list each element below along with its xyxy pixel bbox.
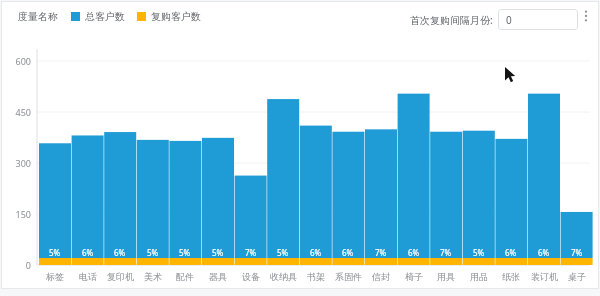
button[interactable]: 总客户数 bbox=[71, 10, 125, 23]
staticText: 书架 bbox=[307, 271, 325, 282]
staticText: 标签 bbox=[46, 271, 64, 282]
staticText: 电话 bbox=[79, 271, 97, 282]
staticText: 6% bbox=[505, 247, 517, 258]
staticText: 300 bbox=[15, 157, 31, 169]
staticText: 7% bbox=[375, 247, 387, 258]
staticText: 器具 bbox=[209, 271, 227, 282]
staticText: 5% bbox=[473, 247, 485, 258]
staticText: 用品 bbox=[470, 271, 488, 282]
staticText: 450 bbox=[15, 106, 31, 118]
staticText: 复印机 bbox=[107, 271, 134, 282]
staticText: 5% bbox=[277, 247, 289, 258]
staticText: 美术 bbox=[144, 271, 162, 282]
staticText: 6% bbox=[538, 247, 550, 258]
staticText: 6% bbox=[342, 247, 354, 258]
staticText: 纸张 bbox=[502, 271, 520, 282]
staticText: 6% bbox=[82, 247, 94, 258]
staticText: 度量名称 bbox=[18, 10, 58, 23]
staticText: 0 bbox=[506, 13, 512, 27]
staticText: 7% bbox=[440, 247, 452, 258]
staticText: 椅子 bbox=[405, 271, 423, 282]
staticText: 装订机 bbox=[531, 271, 558, 282]
staticText: 150 bbox=[15, 208, 31, 220]
button[interactable]: 复购客户数 bbox=[137, 10, 201, 23]
staticText: 6% bbox=[114, 247, 126, 258]
staticText: 总客户数 bbox=[85, 10, 125, 23]
staticText: 收纳具 bbox=[270, 271, 297, 282]
staticText: 7% bbox=[571, 247, 583, 258]
staticText: 5% bbox=[179, 247, 191, 258]
staticText: 600 bbox=[15, 55, 31, 67]
staticText: 5% bbox=[49, 247, 61, 258]
staticText: 配件 bbox=[176, 271, 194, 282]
button[interactable]: More options bbox=[577, 7, 595, 25]
staticText: 系固件 bbox=[335, 271, 362, 282]
staticText: 设备 bbox=[242, 271, 260, 282]
staticText: 7% bbox=[245, 247, 257, 258]
staticText: 复购客户数 bbox=[151, 10, 201, 23]
staticText: 信封 bbox=[372, 271, 390, 282]
button[interactable]: 0 bbox=[498, 9, 578, 30]
staticText: 6% bbox=[408, 247, 420, 258]
staticText: 用具 bbox=[437, 271, 455, 282]
staticText: 5% bbox=[147, 247, 159, 258]
staticText: 首次复购间隔月份: bbox=[410, 13, 493, 27]
staticText: 0 bbox=[25, 259, 31, 271]
staticText: 6% bbox=[310, 247, 322, 258]
staticText: 5% bbox=[212, 247, 224, 258]
staticText: 桌子 bbox=[568, 271, 586, 282]
